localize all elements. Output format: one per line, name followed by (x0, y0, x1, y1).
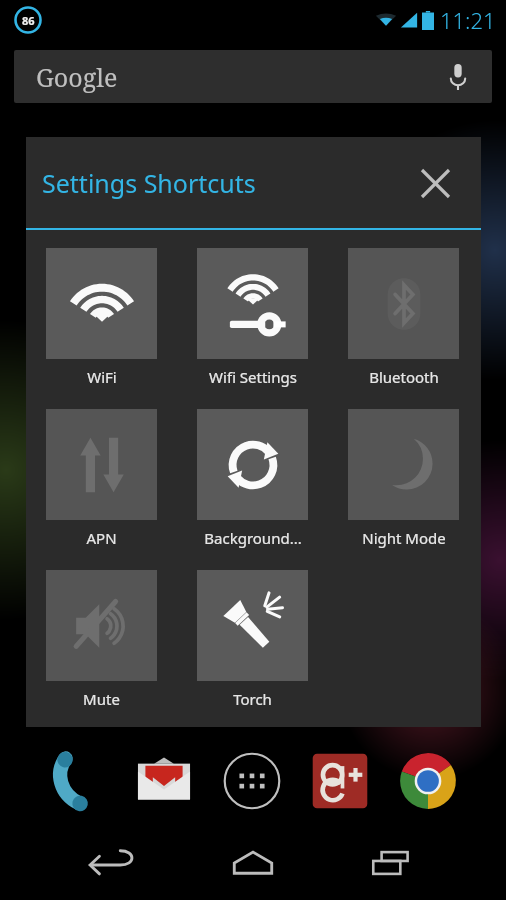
button[interactable]: Bluetooth (328, 242, 479, 403)
button[interactable]: Back (72, 838, 156, 888)
staticText: Mute (83, 689, 120, 709)
button[interactable]: Wifi Settings (177, 242, 328, 403)
staticText: Google (36, 60, 118, 94)
button[interactable]: Recents (350, 838, 434, 888)
staticText: Background... (204, 528, 302, 548)
button[interactable]: Google Plus (306, 747, 374, 815)
staticText: WiFi (87, 367, 117, 387)
staticText: Night Mode (362, 528, 446, 548)
button[interactable]: Home (211, 838, 295, 888)
staticText: Torch (233, 689, 272, 709)
button[interactable]: Phone (42, 747, 110, 815)
staticText: Bluetooth (369, 367, 439, 387)
button[interactable]: APN (26, 403, 177, 564)
button[interactable]: Torch (177, 564, 328, 725)
button[interactable]: Apps (218, 747, 286, 815)
button[interactable]: Mute (26, 564, 177, 725)
button[interactable]: Google search (14, 50, 492, 103)
button[interactable]: Close (413, 161, 457, 205)
staticText: 86 (22, 13, 35, 28)
button[interactable]: Background... (177, 403, 328, 564)
staticText: 11:21 (440, 5, 496, 35)
staticText: APN (86, 528, 117, 548)
button[interactable]: WiFi (26, 242, 177, 403)
button[interactable]: Chrome (394, 747, 462, 815)
staticText: Wifi Settings (209, 367, 297, 387)
button[interactable]: Gmail (130, 747, 198, 815)
button[interactable]: Night Mode (328, 403, 479, 564)
staticText: Settings Shortcuts (42, 166, 256, 200)
